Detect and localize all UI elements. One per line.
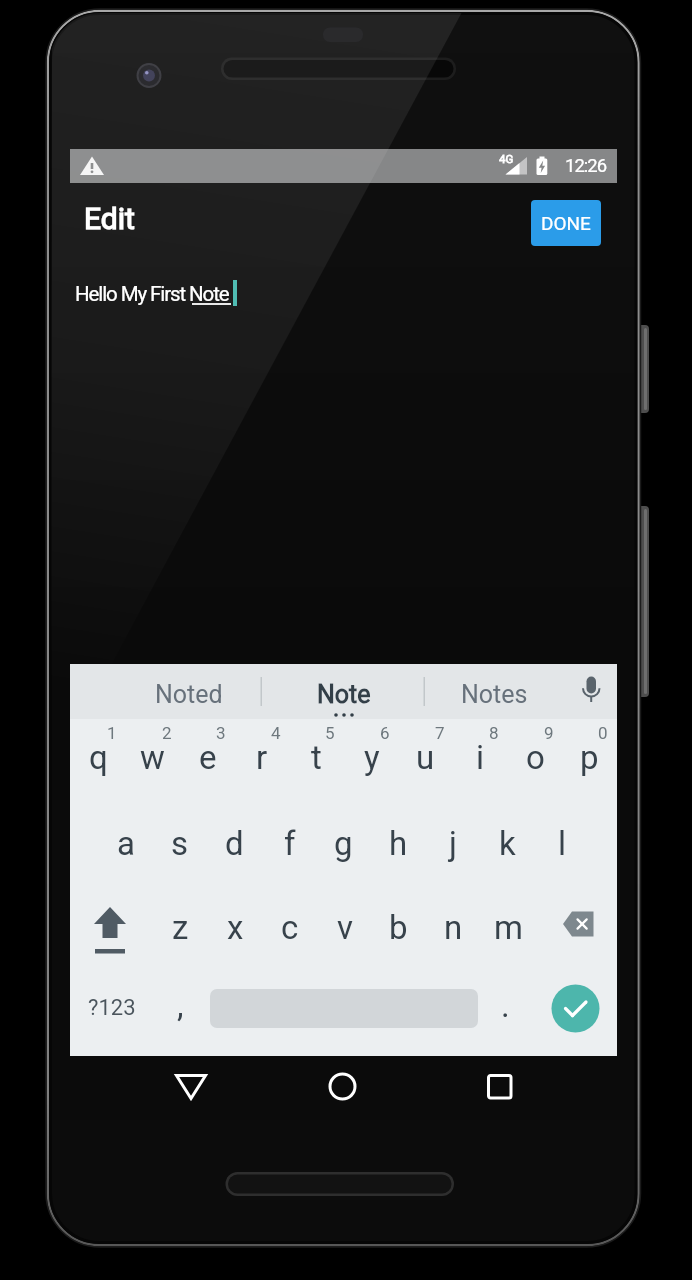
button[interactable]: z bbox=[153, 887, 208, 967]
staticText: z bbox=[172, 908, 189, 947]
staticText: i bbox=[476, 738, 485, 777]
button[interactable]: r bbox=[234, 719, 289, 795]
staticText: m bbox=[494, 908, 523, 947]
button[interactable] bbox=[548, 981, 603, 1036]
button[interactable]: s bbox=[152, 803, 207, 883]
button[interactable] bbox=[424, 664, 570, 719]
staticText: l bbox=[558, 824, 567, 863]
button[interactable]: k bbox=[480, 803, 535, 883]
staticText: 3 bbox=[216, 723, 226, 741]
staticText: 5 bbox=[325, 723, 335, 741]
staticText: 7 bbox=[435, 723, 445, 741]
button[interactable]: d bbox=[207, 803, 262, 883]
button[interactable]: a bbox=[98, 803, 153, 883]
button[interactable]: v bbox=[317, 887, 372, 967]
button[interactable] bbox=[155, 1056, 227, 1118]
staticText: DONE bbox=[541, 212, 591, 234]
staticText: f bbox=[284, 824, 296, 863]
staticText: e bbox=[199, 738, 217, 777]
staticText: Noted bbox=[155, 680, 223, 709]
button[interactable]: t bbox=[289, 719, 344, 795]
button[interactable]: q bbox=[71, 719, 126, 795]
button[interactable]: f bbox=[262, 803, 317, 883]
button[interactable]: m bbox=[481, 887, 536, 967]
button[interactable]: y bbox=[344, 719, 399, 795]
staticText: 1 bbox=[107, 723, 117, 741]
button[interactable] bbox=[535, 887, 617, 967]
button[interactable]: j bbox=[425, 803, 480, 883]
staticText: o bbox=[526, 738, 545, 777]
button[interactable]: g bbox=[316, 803, 371, 883]
staticText: w bbox=[140, 738, 165, 777]
staticText: c bbox=[281, 908, 299, 947]
staticText: a bbox=[117, 824, 135, 863]
staticText: Edit bbox=[84, 201, 135, 236]
staticText: , bbox=[177, 986, 184, 1025]
staticText: n bbox=[444, 908, 463, 947]
button[interactable]: b bbox=[371, 887, 426, 967]
staticText: s bbox=[171, 824, 189, 863]
button[interactable] bbox=[70, 270, 617, 314]
button[interactable]: u bbox=[398, 719, 453, 795]
staticText: k bbox=[499, 824, 516, 863]
button[interactable] bbox=[306, 1056, 378, 1118]
button[interactable]: DONE bbox=[531, 200, 601, 246]
staticText: u bbox=[416, 738, 435, 777]
staticText: t bbox=[311, 738, 322, 777]
staticText: 12:26 bbox=[565, 155, 607, 177]
staticText: Hello My First Note bbox=[75, 282, 229, 306]
staticText: d bbox=[225, 824, 244, 863]
staticText: Note bbox=[317, 680, 371, 709]
button[interactable]: p bbox=[562, 719, 617, 795]
staticText: 4G bbox=[499, 152, 514, 165]
button[interactable]: . bbox=[493, 983, 517, 1027]
staticText: 6 bbox=[380, 723, 390, 741]
button[interactable] bbox=[70, 971, 160, 1051]
staticText: 9 bbox=[544, 723, 554, 741]
staticText: 2 bbox=[162, 723, 172, 741]
staticText: p bbox=[580, 738, 599, 777]
staticText: v bbox=[337, 908, 353, 947]
staticText: 8 bbox=[489, 723, 499, 741]
staticText: j bbox=[449, 824, 457, 863]
staticText: Notes bbox=[461, 680, 528, 709]
staticText: b bbox=[389, 908, 408, 947]
staticText: 0 bbox=[598, 723, 608, 741]
button[interactable]: w bbox=[125, 719, 180, 795]
button[interactable]: c bbox=[262, 887, 317, 967]
staticText: ?123 bbox=[88, 995, 136, 1021]
staticText: r bbox=[256, 738, 268, 777]
staticText: y bbox=[364, 738, 380, 777]
button[interactable]: n bbox=[426, 887, 481, 967]
button[interactable]: i bbox=[453, 719, 508, 795]
staticText: h bbox=[389, 824, 408, 863]
button[interactable] bbox=[463, 1056, 535, 1118]
staticText: q bbox=[89, 738, 108, 777]
button[interactable] bbox=[576, 672, 608, 708]
button[interactable] bbox=[261, 664, 424, 719]
staticText: 4 bbox=[271, 723, 281, 741]
button[interactable]: l bbox=[535, 803, 590, 883]
button[interactable] bbox=[70, 664, 261, 719]
button[interactable]: , bbox=[168, 983, 192, 1027]
staticText: g bbox=[334, 824, 353, 863]
button[interactable]: e bbox=[180, 719, 235, 795]
button[interactable]: o bbox=[508, 719, 563, 795]
button[interactable]: x bbox=[208, 887, 263, 967]
button[interactable] bbox=[70, 887, 153, 967]
staticText: x bbox=[227, 908, 244, 947]
staticText: . bbox=[501, 986, 510, 1025]
button[interactable]: h bbox=[371, 803, 426, 883]
